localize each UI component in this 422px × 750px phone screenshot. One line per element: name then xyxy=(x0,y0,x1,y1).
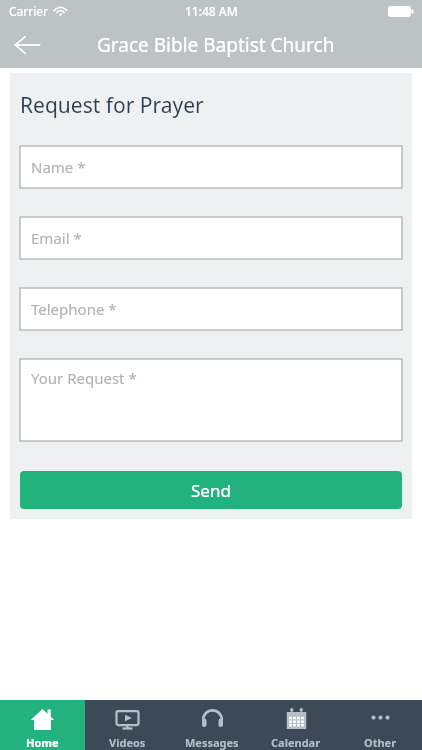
button[interactable]: Calendar xyxy=(254,700,338,750)
button[interactable]: Email * xyxy=(20,217,402,259)
staticText: Videos xyxy=(109,735,146,750)
staticText: Calendar xyxy=(271,735,321,750)
button[interactable]: Other xyxy=(338,700,422,750)
staticText: 11:48 AM xyxy=(185,3,238,19)
staticText: Grace Bible Baptist Church xyxy=(97,32,335,58)
staticText: Other xyxy=(364,735,397,750)
staticText: Email * xyxy=(31,228,82,248)
button[interactable]: Your Request * xyxy=(20,359,402,441)
staticText: Send xyxy=(191,479,231,502)
staticText: Carrier xyxy=(9,3,49,19)
staticText: Name * xyxy=(31,157,86,177)
staticText: Telephone * xyxy=(31,299,117,319)
button[interactable]: Telephone * xyxy=(20,288,402,330)
button[interactable]: Messages xyxy=(170,700,254,750)
button[interactable]: Videos xyxy=(85,700,170,750)
staticText: Home xyxy=(26,735,59,750)
button[interactable]: Send xyxy=(20,471,402,509)
button[interactable]: Name * xyxy=(20,146,402,188)
staticText: Request for Prayer xyxy=(20,91,204,120)
staticText: Messages xyxy=(185,735,239,750)
button[interactable]: Back xyxy=(0,22,54,68)
staticText: Your Request * xyxy=(31,368,137,388)
button[interactable]: Home xyxy=(0,700,85,750)
